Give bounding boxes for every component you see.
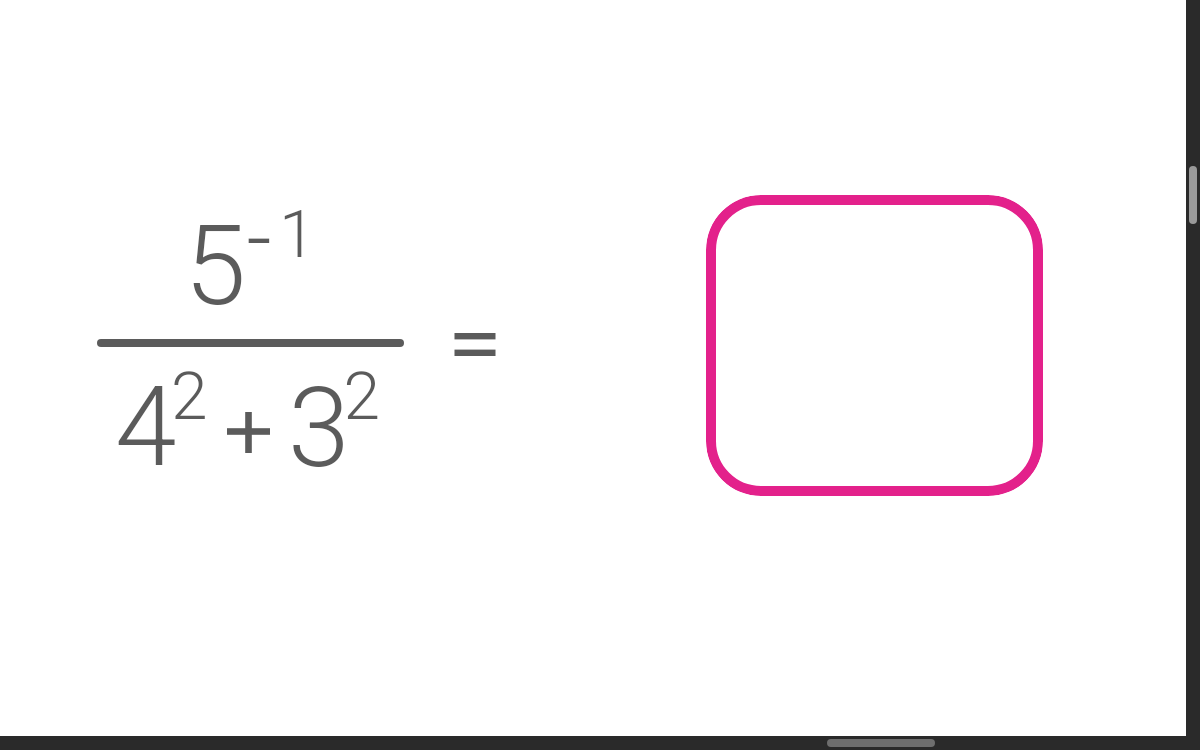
button[interactable]: Answer input box [706,195,1043,496]
staticText: 5^-1 / (4^2 + 3^2) = [97,200,497,480]
button[interactable]: Home [827,739,935,747]
